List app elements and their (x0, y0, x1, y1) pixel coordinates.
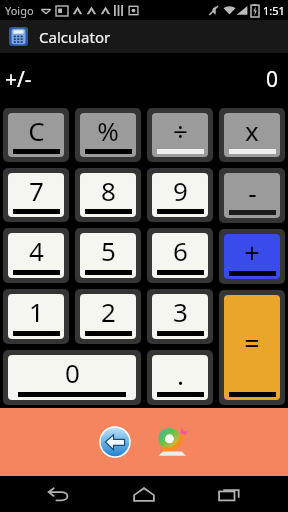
staticText: ÷ (173, 113, 188, 147)
button[interactable]: 1 (3, 289, 69, 344)
button[interactable]: 5 (75, 228, 141, 283)
staticText: 3 (173, 294, 188, 329)
button[interactable]: Back (33, 476, 85, 512)
button[interactable]: 6 (147, 228, 213, 283)
button[interactable]: Browser (154, 424, 190, 460)
button[interactable]: . (147, 350, 213, 405)
button[interactable]: + (219, 229, 285, 284)
staticText: 1 (29, 294, 44, 329)
staticText: 8 (101, 173, 116, 207)
button[interactable]: 4 (3, 228, 69, 283)
button[interactable]: Back (98, 425, 132, 459)
staticText: C (28, 113, 45, 147)
staticText: + (244, 234, 260, 269)
button[interactable]: +/- (0, 61, 38, 98)
staticText: = (244, 324, 260, 361)
button[interactable]: Recent apps (203, 476, 255, 512)
staticText: Calculator (39, 27, 111, 47)
staticText: - (248, 175, 257, 210)
staticText: 5 (101, 233, 116, 268)
button[interactable]: ÷ (147, 108, 213, 162)
button[interactable]: 8 (75, 168, 141, 222)
staticText: 4 (29, 233, 44, 268)
staticText: x (245, 113, 259, 147)
staticText: 7 (29, 173, 44, 207)
button[interactable]: 0 (3, 350, 141, 405)
button[interactable]: 3 (147, 289, 213, 344)
button[interactable]: 2 (75, 289, 141, 344)
staticText: . (177, 357, 184, 392)
staticText: 0 (65, 355, 80, 390)
staticText: 9 (173, 173, 188, 207)
button[interactable]: 7 (3, 168, 69, 222)
staticText: 6 (173, 233, 188, 268)
staticText: +/- (5, 65, 32, 94)
button[interactable]: % (75, 108, 141, 162)
button[interactable]: Home (118, 476, 170, 512)
staticText: 2 (101, 294, 116, 329)
button[interactable]: = (219, 290, 285, 405)
staticText: % (97, 113, 119, 147)
button[interactable]: - (219, 168, 285, 223)
button[interactable]: x (219, 108, 285, 162)
button[interactable]: C (3, 108, 69, 162)
button[interactable]: Calculator icon (9, 27, 28, 46)
staticText: Yoigo (5, 3, 34, 18)
button[interactable]: 9 (147, 168, 213, 222)
staticText: 1:51 (263, 3, 285, 18)
staticText: 0 (266, 65, 279, 94)
